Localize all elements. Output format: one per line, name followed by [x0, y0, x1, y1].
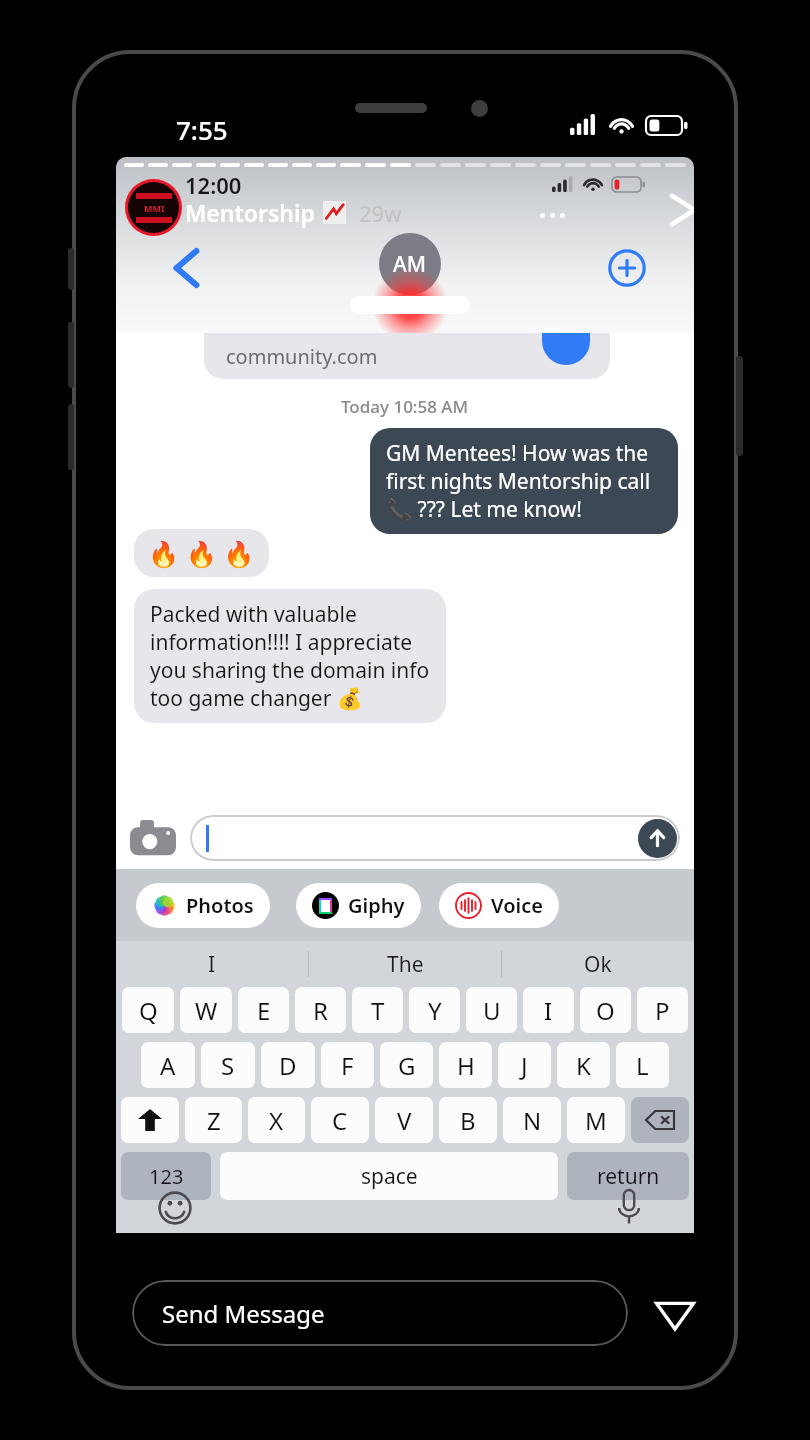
button[interactable]: C	[311, 1097, 369, 1143]
button[interactable]: Voice	[439, 883, 559, 928]
staticText: 12:00	[185, 170, 242, 200]
staticText: B	[460, 1104, 476, 1137]
staticText: AM	[393, 250, 427, 279]
button[interactable]: U	[466, 987, 517, 1033]
staticText: 7:55	[176, 112, 228, 147]
button[interactable]: Send	[638, 819, 677, 858]
button[interactable]: N	[503, 1097, 561, 1143]
staticText: GM Mentees! How was the first nights Men…	[386, 439, 662, 523]
staticText: M	[585, 1104, 607, 1137]
staticText: P	[655, 994, 670, 1027]
staticText: H	[457, 1049, 475, 1082]
button[interactable]: Send Message	[132, 1280, 628, 1346]
button[interactable]: L	[616, 1042, 669, 1088]
button[interactable]: MMI	[128, 182, 179, 233]
button[interactable]: Send	[190, 815, 680, 861]
button[interactable]: E	[238, 987, 289, 1033]
staticText: Q	[139, 994, 158, 1027]
button[interactable]: Photos	[136, 883, 270, 928]
staticText: Y	[428, 994, 442, 1027]
staticText: W	[195, 994, 218, 1027]
staticText: D	[279, 1049, 297, 1082]
button[interactable]: Back	[174, 251, 200, 285]
button[interactable]: P	[637, 987, 688, 1033]
button[interactable]: Emoji	[158, 1191, 192, 1225]
button[interactable]: Y	[409, 987, 460, 1033]
staticText: I	[544, 994, 553, 1027]
staticText: F	[341, 1049, 354, 1082]
button[interactable]: space	[220, 1152, 558, 1200]
staticText: Send Message	[162, 1297, 325, 1330]
staticText: Mentorship	[185, 197, 315, 228]
staticText: 123	[149, 1163, 184, 1190]
staticText: Voice	[491, 892, 543, 919]
staticText: Giphy	[348, 892, 405, 919]
button[interactable]: Backspace	[631, 1097, 689, 1143]
button[interactable]: S	[201, 1042, 255, 1088]
button[interactable]: O	[580, 987, 631, 1033]
button[interactable]: F	[321, 1042, 374, 1088]
button[interactable]: D	[261, 1042, 315, 1088]
staticText: C	[332, 1104, 348, 1137]
button[interactable]: A	[141, 1042, 195, 1088]
staticText: R	[313, 994, 328, 1027]
button[interactable]: Ok	[502, 941, 694, 987]
staticText: return	[597, 1162, 660, 1191]
staticText: X	[269, 1104, 284, 1137]
button[interactable]: T	[352, 987, 403, 1033]
staticText: U	[483, 994, 501, 1027]
staticText: J	[521, 1049, 528, 1082]
button[interactable]: Giphy	[296, 883, 421, 928]
staticText: Today 10:58 AM	[341, 395, 469, 418]
button[interactable]: Next story	[672, 193, 694, 227]
staticText: Packed with valuable information!!!! I a…	[150, 600, 430, 712]
staticText: A	[160, 1049, 176, 1082]
button[interactable]: I	[523, 987, 574, 1033]
staticText: MMI	[144, 202, 165, 214]
button[interactable]: More options	[540, 203, 578, 227]
staticText: Z	[207, 1104, 221, 1137]
button[interactable]: 123	[121, 1152, 211, 1200]
button[interactable]: Share	[648, 1286, 702, 1340]
staticText: L	[636, 1049, 649, 1082]
staticText: E	[257, 994, 271, 1027]
button[interactable]: J	[498, 1042, 551, 1088]
staticText: Photos	[186, 892, 254, 919]
button[interactable]: New message	[608, 249, 646, 287]
staticText: S	[221, 1049, 235, 1082]
staticText: space	[361, 1162, 418, 1191]
staticText: K	[576, 1049, 591, 1082]
button[interactable]: V	[375, 1097, 433, 1143]
staticText: N	[523, 1104, 542, 1137]
staticText: community.com	[226, 343, 378, 370]
button[interactable]: Dictation	[616, 1189, 642, 1225]
button[interactable]: I	[116, 941, 308, 987]
button[interactable]: Camera	[130, 820, 176, 856]
staticText: I	[208, 950, 216, 979]
button[interactable]: W	[180, 987, 232, 1033]
button[interactable]: R	[295, 987, 346, 1033]
button[interactable]: K	[557, 1042, 610, 1088]
staticText: T	[371, 994, 385, 1027]
button[interactable]: H	[439, 1042, 492, 1088]
button[interactable]: X	[248, 1097, 305, 1143]
button[interactable]: G	[380, 1042, 433, 1088]
staticText: 🔥 🔥 🔥	[148, 536, 255, 570]
staticText: 29w	[359, 198, 402, 228]
button[interactable]: The	[309, 941, 501, 987]
staticText: V	[397, 1104, 412, 1137]
staticText: The	[387, 950, 424, 979]
staticText: Ok	[584, 950, 612, 979]
staticText: G	[398, 1049, 416, 1082]
button[interactable]: Q	[122, 987, 174, 1033]
button[interactable]: M	[567, 1097, 625, 1143]
button[interactable]: Shift	[121, 1097, 179, 1143]
button[interactable]: Z	[185, 1097, 242, 1143]
button[interactable]: return	[567, 1152, 689, 1200]
button[interactable]: B	[439, 1097, 497, 1143]
staticText: O	[596, 994, 615, 1027]
